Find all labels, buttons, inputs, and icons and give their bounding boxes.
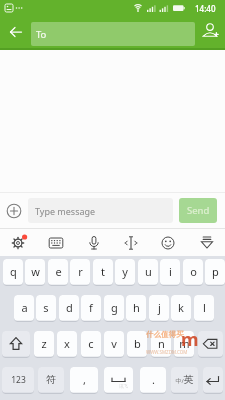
staticText: e	[55, 264, 62, 279]
button[interactable]: w	[25, 259, 45, 286]
staticText: g	[111, 300, 118, 315]
staticText: q	[10, 264, 17, 279]
staticText: Send	[187, 204, 210, 217]
button[interactable]	[104, 367, 133, 394]
button[interactable]: c	[81, 331, 101, 358]
button[interactable]	[197, 18, 223, 44]
button[interactable]: u	[138, 259, 158, 286]
button[interactable]: .	[140, 367, 166, 394]
button[interactable]: a	[14, 295, 34, 322]
button[interactable]	[203, 367, 223, 394]
staticText: z	[41, 336, 47, 351]
staticText: x	[64, 336, 70, 351]
staticText: WWW.SMZDM.COM	[146, 349, 188, 355]
button[interactable]	[155, 230, 181, 256]
staticText: To	[36, 28, 47, 41]
staticText: c	[88, 336, 94, 351]
staticText: u	[145, 264, 152, 279]
button[interactable]	[118, 230, 144, 256]
staticText: m	[181, 327, 199, 352]
staticText: b	[134, 336, 141, 351]
button[interactable]	[43, 230, 69, 256]
button[interactable]: ,	[70, 367, 98, 394]
staticText: 14:40	[195, 3, 216, 14]
button[interactable]	[194, 230, 220, 256]
button[interactable]: q	[3, 259, 23, 286]
button[interactable]: 中/英	[171, 367, 198, 394]
staticText: p	[212, 264, 219, 279]
staticText: m	[179, 336, 190, 351]
staticText: t	[101, 264, 105, 279]
button[interactable]: z	[34, 331, 54, 358]
button[interactable]: v	[104, 331, 124, 358]
staticText: k	[178, 300, 184, 315]
staticText: a	[21, 300, 28, 315]
button[interactable]	[5, 230, 31, 256]
button[interactable]	[4, 21, 26, 43]
staticText: ,	[83, 372, 86, 387]
button[interactable]: 123	[2, 367, 34, 394]
button[interactable]: i	[160, 259, 180, 286]
button[interactable]: b	[127, 331, 147, 358]
button[interactable]: t	[93, 259, 113, 286]
staticText: 符	[46, 373, 56, 386]
staticText: 中/英	[175, 373, 194, 386]
staticText: f	[89, 300, 93, 315]
button[interactable]: s	[36, 295, 56, 322]
button[interactable]: m	[174, 331, 194, 358]
staticText: h	[133, 300, 140, 315]
staticText: Type message	[35, 205, 96, 217]
button[interactable]	[198, 331, 223, 358]
button[interactable]	[3, 200, 25, 222]
button[interactable]: f	[81, 295, 101, 322]
staticText: 讯飞	[119, 384, 128, 390]
staticText: n	[158, 336, 165, 351]
button[interactable]	[81, 230, 107, 256]
button[interactable]	[2, 331, 30, 358]
staticText: r	[78, 264, 83, 279]
button[interactable]: h	[126, 295, 146, 322]
button[interactable]: n	[151, 331, 171, 358]
staticText: .	[152, 372, 155, 387]
button[interactable]: l	[194, 295, 214, 322]
button[interactable]: o	[183, 259, 203, 286]
staticText: i	[169, 264, 172, 279]
button[interactable]: Send	[179, 198, 217, 223]
button[interactable]: Type message	[28, 198, 173, 223]
button[interactable]: To	[31, 22, 195, 46]
button[interactable]: p	[205, 259, 225, 286]
button[interactable]: k	[171, 295, 191, 322]
staticText: v	[111, 336, 117, 351]
staticText: 123	[11, 374, 26, 386]
button[interactable]: y	[115, 259, 135, 286]
staticText: l	[203, 300, 206, 315]
button[interactable]: g	[104, 295, 124, 322]
button[interactable]: j	[149, 295, 169, 322]
button[interactable]: 符	[38, 367, 64, 394]
staticText: 什么值得买	[146, 330, 184, 339]
staticText: d	[66, 300, 73, 315]
staticText: j	[158, 300, 161, 315]
button[interactable]: x	[57, 331, 77, 358]
staticText: w	[31, 264, 40, 279]
staticText: o	[190, 264, 197, 279]
staticText: s	[43, 300, 49, 315]
button[interactable]: d	[59, 295, 79, 322]
staticText: y	[122, 264, 128, 279]
button[interactable]: e	[48, 259, 68, 286]
button[interactable]: r	[70, 259, 90, 286]
